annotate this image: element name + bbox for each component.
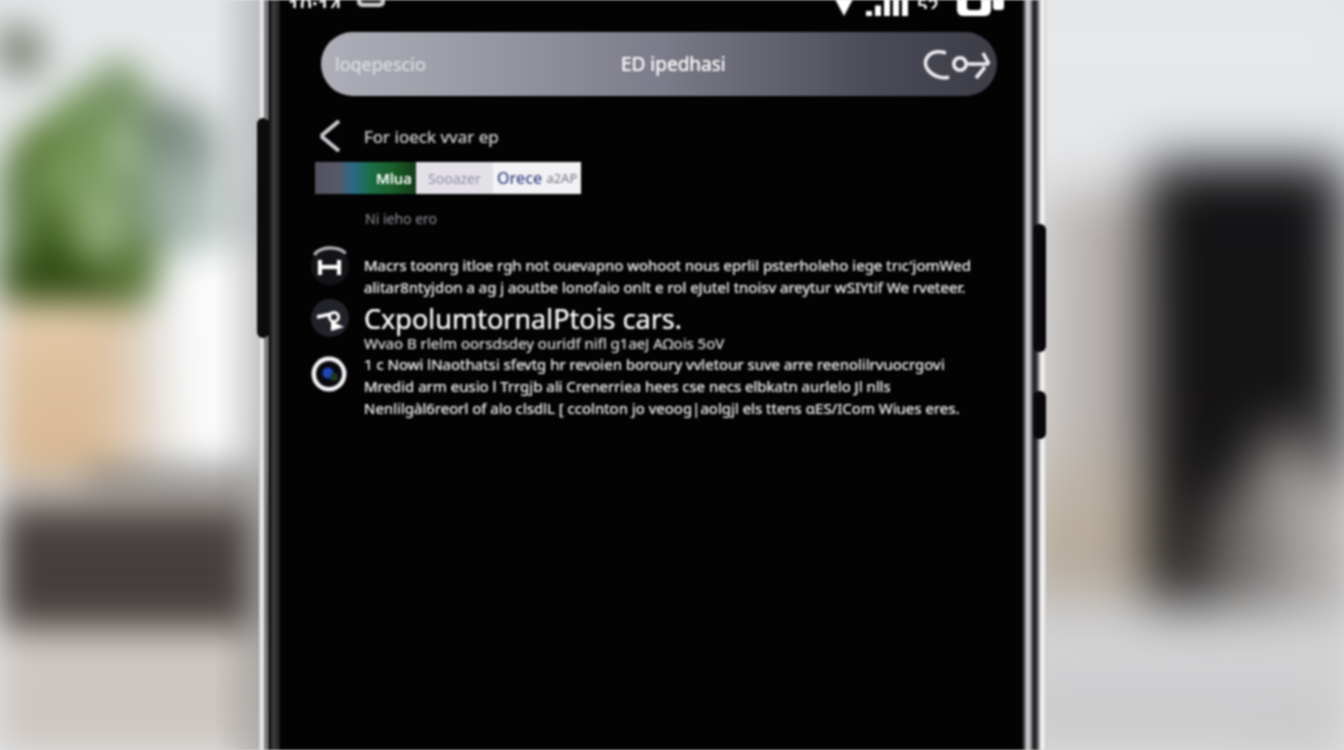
button[interactable]: loqepescio — [321, 32, 997, 96]
staticText: Wvao B rlelm oorsdsdey ouridf nifl g1aeJ… — [364, 333, 1024, 353]
button[interactable]: Sooazer — [416, 162, 493, 194]
other: Back — [320, 120, 340, 152]
staticText: a2AP — [543, 169, 578, 187]
staticText: Macrs toonrg itloe rgh not ouevapno woho… — [364, 255, 1024, 275]
staticText: ED ipedhasi — [621, 51, 726, 77]
staticText: Nenlilgàl6reorl of alo clsdlL [ ccolnton… — [364, 398, 1024, 418]
staticText: Sooazer — [428, 169, 481, 188]
staticText: CxpolumtornalPtois cars. — [364, 300, 1024, 337]
staticText: Orece — [497, 167, 543, 189]
button[interactable]: Back — [280, 118, 1022, 154]
staticText: loqepescio — [335, 52, 426, 77]
staticText: Mredid arm eusio l Trrgjb ali Crenerriea… — [364, 376, 1024, 396]
staticText: alitar8ntyjdon a ag j aoutbe lonofaio on… — [364, 277, 1024, 297]
staticText: 1 c Nowi lNaothatsi sfevtg hr revoien bo… — [364, 354, 1024, 374]
button[interactable]: Mlua — [315, 162, 416, 194]
staticText: 10:14 — [288, 0, 342, 8]
button[interactable]: Orece — [493, 162, 581, 194]
staticText: Ni ieho ero — [365, 209, 438, 228]
staticText: For ioeck vvar ep — [364, 125, 499, 148]
staticText: Mlua — [376, 168, 412, 188]
button[interactable]: Account — [921, 47, 979, 81]
staticText: 52 — [917, 0, 939, 9]
